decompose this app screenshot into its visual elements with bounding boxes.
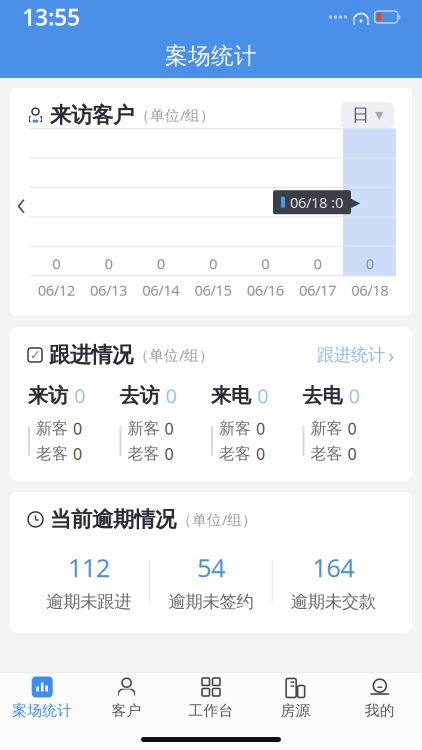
staticText: 0 [256, 418, 265, 439]
staticText: 06/18 [351, 280, 388, 300]
staticText: 0 [314, 254, 322, 273]
staticText: 0 [73, 443, 82, 464]
staticText: 0 [209, 254, 217, 273]
staticText: （单位/组） [135, 105, 215, 125]
staticText: 房源 [280, 701, 310, 719]
staticText: 13:55 [22, 2, 80, 32]
staticText: 06/14 [142, 280, 179, 300]
staticText: 跟进统计 [317, 344, 385, 366]
staticText: 来电 [211, 383, 251, 408]
button[interactable]: 客户 [84, 669, 169, 725]
staticText: 0 [256, 443, 265, 464]
staticText: 112 [68, 550, 110, 584]
staticText: 0 [164, 443, 173, 464]
staticText: 0 [164, 418, 173, 439]
button[interactable]: 我的 [338, 669, 422, 725]
staticText: ▼ [375, 109, 383, 121]
staticText: › [388, 342, 394, 368]
staticText: 06/17 [299, 280, 336, 300]
staticText: 0 [257, 382, 268, 409]
staticText: 当前逾期情况 [50, 506, 176, 532]
staticText: ✓ [29, 347, 40, 362]
button[interactable]: 房源 [253, 669, 338, 725]
staticText: 0 [261, 254, 269, 273]
staticText: 0 [347, 418, 356, 439]
staticText: 0 [52, 254, 60, 273]
staticText: 新客 [219, 419, 251, 438]
staticText: 06/16 [247, 280, 284, 300]
staticText: 0 [157, 254, 165, 273]
staticText: 新客 [127, 419, 159, 438]
staticText: 逾期未跟进 [46, 591, 131, 612]
staticText: 54 [197, 550, 225, 584]
staticText: 06/18 :0 [290, 192, 343, 212]
button[interactable]: 日 [341, 102, 394, 128]
button[interactable]: 案场统计 [0, 669, 84, 725]
staticText: ‹ [16, 179, 25, 225]
staticText: 工作台 [188, 701, 233, 719]
staticText: 案场统计 [12, 701, 72, 719]
staticText: 来访客户 [50, 102, 134, 128]
staticText: 去电 [302, 383, 342, 408]
staticText: （单位/组） [134, 345, 214, 365]
staticText: 老客 [219, 444, 251, 463]
staticText: 我的 [365, 701, 395, 719]
staticText: 新客 [310, 419, 342, 438]
staticText: 新客 [36, 419, 68, 438]
button[interactable]: 工作台 [169, 669, 253, 725]
staticText: 0 [347, 443, 356, 464]
staticText: （单位/组） [177, 510, 257, 529]
staticText: 老客 [127, 444, 159, 463]
staticText: 164 [312, 550, 354, 584]
staticText: 来访 [28, 383, 68, 408]
staticText: 案场统计 [165, 42, 257, 70]
staticText: 老客 [310, 444, 342, 463]
staticText: 0 [348, 382, 359, 409]
staticText: 老客 [36, 444, 68, 463]
staticText: 逾期未签约 [168, 591, 253, 612]
staticText: 06/13 [90, 280, 127, 300]
staticText: 去访 [119, 383, 159, 408]
staticText: 0 [366, 254, 374, 273]
staticText: 06/12 [38, 280, 75, 300]
staticText: 0 [165, 382, 176, 409]
button[interactable]: 跟进统计 [317, 342, 394, 368]
staticText: 客户 [112, 701, 142, 719]
staticText: 0 [74, 382, 85, 409]
staticText: 06/15 [194, 280, 231, 300]
staticText: 日 [352, 104, 369, 126]
staticText: 逾期未交款 [291, 591, 376, 612]
staticText: 0 [73, 418, 82, 439]
staticText: 跟进情况 [49, 342, 133, 368]
staticText: 0 [104, 254, 112, 273]
staticText: ▶ [349, 194, 360, 210]
